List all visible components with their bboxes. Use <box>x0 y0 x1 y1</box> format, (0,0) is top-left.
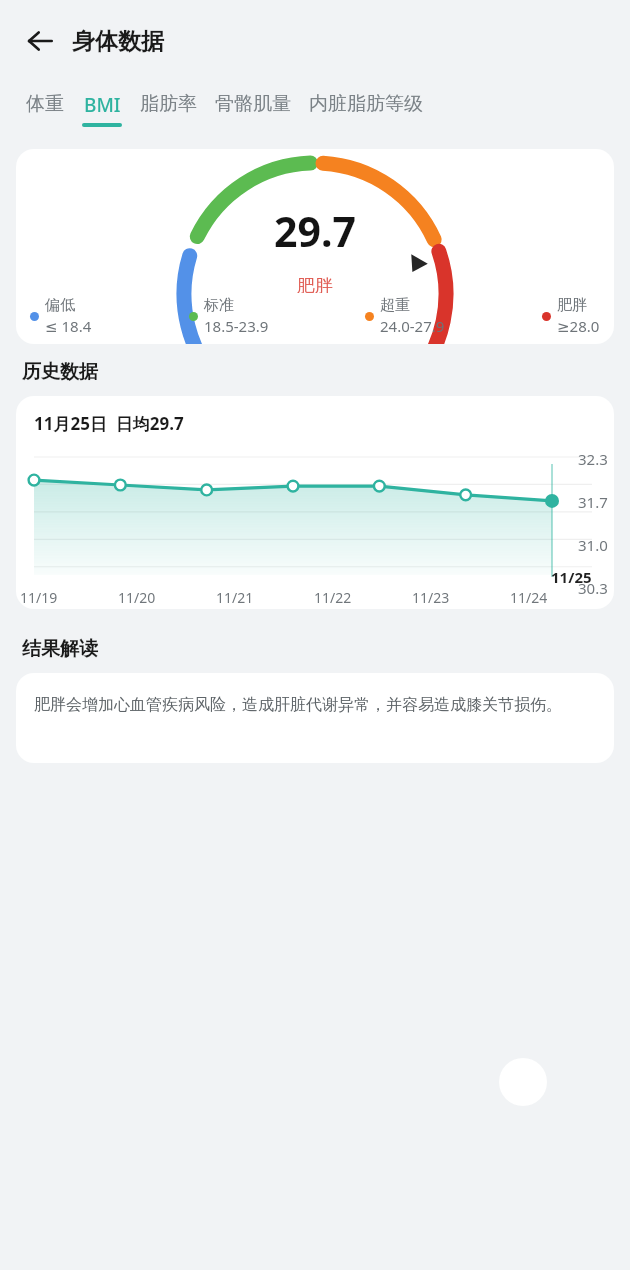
staticText: 11/22 <box>314 588 360 607</box>
button[interactable]: 脂肪率 <box>138 88 199 129</box>
button[interactable]: 体重 <box>24 88 66 129</box>
staticText: 11/23 <box>412 588 458 607</box>
button[interactable]: 肥胖会增加心血管疾病风险，造成肝脏代谢异常，并容易造成膝关节损伤。 <box>16 673 614 763</box>
staticText: 11/25 <box>551 567 592 587</box>
staticText: 11/24 <box>510 588 556 607</box>
staticText: 标准 <box>204 296 234 315</box>
staticText: 体重 <box>26 92 64 116</box>
staticText: 超重 <box>380 296 410 315</box>
staticText: ≥28.0 <box>557 316 600 336</box>
staticText: ≤ 18.4 <box>45 316 92 336</box>
staticText: 32.3 <box>578 449 608 469</box>
button[interactable]: 11月25日 日均29.7 <box>16 396 614 609</box>
staticText: 肥胖会增加心血管疾病风险，造成肝脏代谢异常，并容易造成膝关节损伤。 <box>34 695 562 715</box>
staticText: 内脏脂肪等级 <box>309 92 423 116</box>
staticText: 骨骼肌量 <box>215 92 291 116</box>
staticText: 脂肪率 <box>140 92 197 116</box>
staticText: 身体数据 <box>72 27 164 56</box>
staticText: 30.3 <box>578 578 608 598</box>
button[interactable]: 内脏脂肪等级 <box>307 88 425 129</box>
button[interactable]: 骨骼肌量 <box>213 88 293 129</box>
button[interactable]: Scroll handle <box>499 1058 547 1106</box>
staticText: 肥胖 <box>297 275 333 293</box>
staticText: 11/19 <box>20 588 66 607</box>
staticText: 18.5-23.9 <box>204 316 269 336</box>
staticText: 肥胖 <box>557 296 587 315</box>
staticText: 31.0 <box>578 535 608 555</box>
button[interactable]: Back <box>14 15 66 67</box>
staticText: BMI <box>84 92 121 118</box>
button[interactable]: 29.7 <box>16 149 614 344</box>
staticText: 偏低 <box>45 296 75 315</box>
staticText: 31.7 <box>578 492 608 512</box>
staticText: 历史数据 <box>22 360 98 384</box>
staticText: 11月25日 日均29.7 <box>34 412 184 435</box>
staticText: 24.0-27.9 <box>380 316 445 336</box>
staticText: 11/20 <box>118 588 164 607</box>
staticText: 结果解读 <box>22 637 98 661</box>
staticText: 29.7 <box>274 203 356 259</box>
staticText: 11/21 <box>216 588 262 607</box>
button[interactable]: BMI <box>80 88 124 131</box>
